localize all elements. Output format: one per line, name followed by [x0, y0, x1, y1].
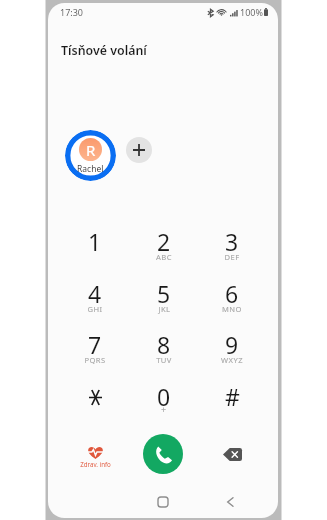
staticText: GHI [87, 304, 103, 314]
staticText: ABC [156, 252, 172, 262]
staticText: 1 [88, 226, 102, 257]
staticText: PQRS [84, 355, 106, 365]
button[interactable]: 7 [61, 320, 129, 370]
button[interactable]: 6 [198, 269, 266, 319]
staticText: + [161, 403, 167, 415]
staticText: Rachel [77, 163, 104, 175]
staticText: MNO [222, 304, 242, 314]
staticText: TUV [156, 355, 172, 365]
button[interactable]: 9 [198, 320, 266, 370]
staticText: JKL [158, 304, 171, 314]
button[interactable]: Backspace [217, 440, 248, 469]
staticText: 8 [157, 329, 171, 360]
button[interactable]: 1 [61, 217, 129, 267]
button[interactable]: 0 [130, 372, 198, 422]
staticText: # [225, 381, 240, 412]
button[interactable]: Add emergency contact [126, 137, 152, 163]
staticText: 5 [157, 278, 171, 309]
staticText: Zdrav. info [80, 460, 111, 468]
staticText: 100% [240, 6, 263, 18]
staticText: DEF [224, 252, 240, 262]
staticText: 3 [225, 226, 239, 257]
button[interactable]: 2 [130, 217, 198, 267]
button[interactable]: # [198, 372, 266, 422]
button[interactable] [61, 372, 129, 422]
button[interactable]: Call [143, 434, 183, 474]
staticText: 9 [225, 329, 239, 360]
staticText: 4 [88, 278, 102, 309]
staticText: 7 [88, 329, 102, 360]
staticText: R [86, 140, 96, 160]
button[interactable]: 3 [198, 217, 266, 267]
button[interactable]: Home [149, 488, 177, 516]
staticText: 0 [157, 381, 171, 412]
staticText: WXYZ [221, 355, 243, 365]
button[interactable]: 5 [130, 269, 198, 319]
staticText: 17:30 [60, 6, 84, 18]
button[interactable]: 4 [61, 269, 129, 319]
staticText: 2 [157, 226, 171, 257]
staticText: Tísňové volání [61, 42, 147, 59]
staticText: 6 [225, 278, 239, 309]
button[interactable]: 8 [130, 320, 198, 370]
button[interactable]: Zdrav. info [70, 440, 120, 472]
button[interactable]: R [65, 130, 116, 181]
button[interactable]: Back [216, 488, 244, 516]
